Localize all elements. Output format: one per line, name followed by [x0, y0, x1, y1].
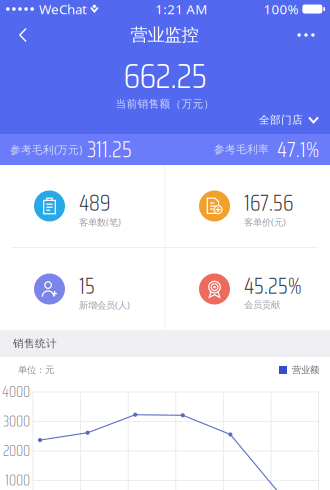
staticText: 全部门店 [259, 113, 303, 126]
staticText: 新增会员(人) [79, 299, 130, 311]
staticText: 营业额 [292, 364, 319, 376]
staticText: 参考毛利率 [214, 143, 269, 156]
staticText: 3000 [3, 410, 30, 433]
button[interactable]: 167.56 [165, 165, 330, 247]
button[interactable]: 489 [0, 165, 165, 247]
staticText: 2000 [3, 439, 30, 463]
button[interactable]: More options [289, 18, 323, 52]
staticText: 45.25% [244, 269, 302, 303]
staticText: 销售统计 [13, 337, 57, 350]
staticText: 489 [79, 186, 110, 220]
button[interactable]: Back [6, 18, 40, 52]
staticText: 参考毛利(万元) [10, 142, 82, 157]
staticText: 当前销售额（万元） [115, 97, 214, 110]
staticText: 营业监控 [130, 24, 198, 46]
staticText: 客单价(元) [244, 216, 286, 228]
staticText: 662.25 [123, 49, 206, 103]
staticText: 单位：元 [18, 364, 54, 376]
staticText: 311.25 [87, 132, 132, 167]
staticText: WeChat [39, 0, 87, 18]
staticText: 4000 [2, 380, 30, 404]
staticText: 1:21 AM [155, 0, 207, 18]
staticText: 100% [263, 0, 298, 18]
button[interactable]: 45.25% [165, 248, 330, 330]
button[interactable]: 全部门店 [259, 114, 330, 126]
staticText: 167.56 [244, 186, 293, 220]
staticText: 15 [79, 269, 95, 303]
staticText: 1000 [5, 469, 30, 490]
staticText: 客单数(笔) [79, 216, 121, 228]
staticText: 47.1% [277, 133, 319, 166]
staticText: 会员贡献 [244, 299, 280, 311]
button[interactable]: 15 [0, 248, 165, 330]
